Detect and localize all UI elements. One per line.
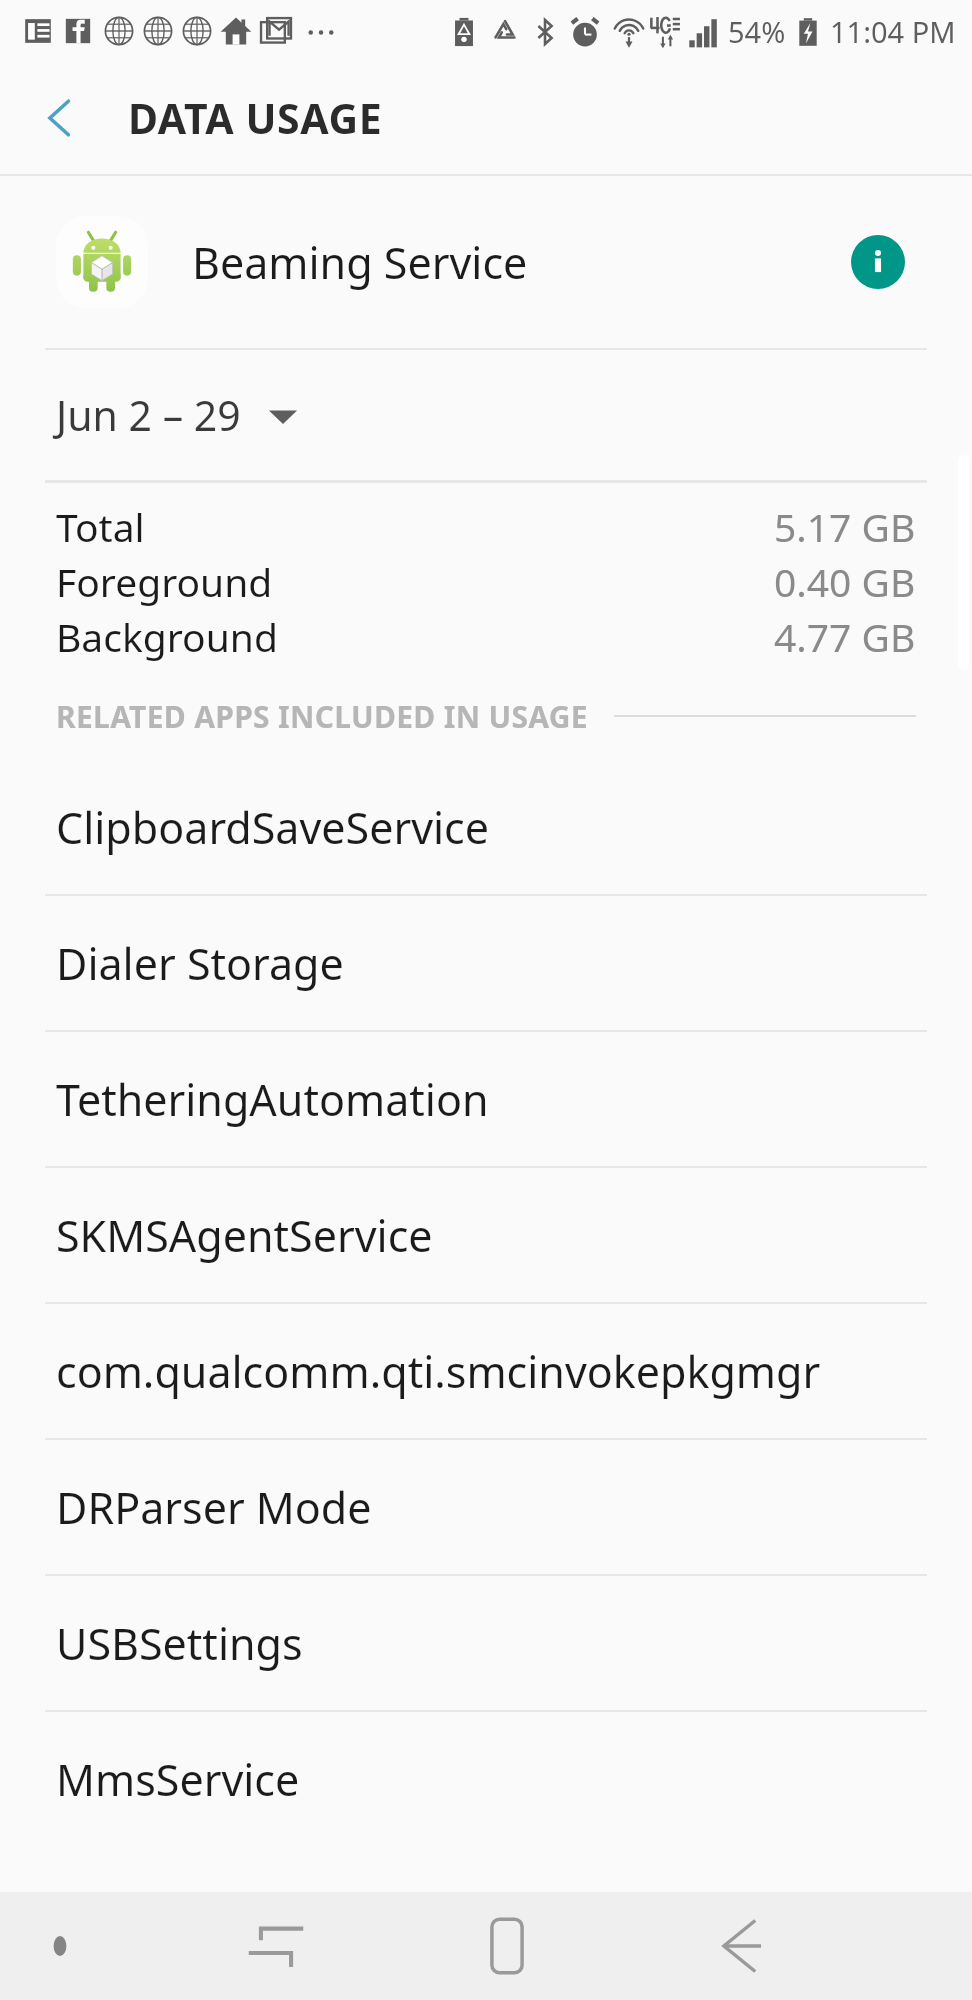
staticText: Background [56, 610, 278, 663]
staticText: ClipboardSaveService [56, 798, 490, 857]
button[interactable]: SKMSAgentService [0, 1168, 972, 1302]
button[interactable]: Jun 2 – 29 [0, 350, 972, 480]
staticText: DRParser Mode [56, 1478, 372, 1537]
button[interactable]: Navigation hint [24, 1910, 96, 1982]
button[interactable]: Beaming Service [0, 176, 972, 348]
staticText: RELATED APPS INCLUDED IN USAGE [56, 696, 588, 737]
button[interactable]: DRParser Mode [0, 1440, 972, 1574]
staticText: MmsService [56, 1750, 300, 1809]
staticText: Total [56, 500, 145, 553]
staticText: TetheringAutomation [56, 1070, 489, 1129]
button[interactable]: com.qualcomm.qti.smcinvokepkgmgr [0, 1304, 972, 1438]
button[interactable]: App info [834, 218, 922, 306]
button[interactable]: Recent apps [216, 1892, 336, 2000]
staticText: com.qualcomm.qti.smcinvokepkgmgr [56, 1342, 821, 1401]
staticText: Foreground [56, 555, 273, 608]
staticText: 54% [728, 12, 786, 51]
button[interactable]: Dialer Storage [0, 896, 972, 1030]
staticText: SKMSAgentService [56, 1206, 433, 1265]
staticText: DATA USAGE [128, 90, 383, 146]
staticText: Beaming Service [192, 233, 528, 292]
button[interactable]: ClipboardSaveService [0, 760, 972, 894]
button[interactable]: Back [679, 1892, 799, 2000]
staticText: Dialer Storage [56, 934, 344, 993]
staticText: 0.40 GB [774, 555, 916, 608]
button[interactable]: Home [447, 1892, 567, 2000]
staticText: 4.77 GB [774, 610, 916, 663]
button[interactable]: Back [24, 82, 96, 154]
button[interactable]: USBSettings [0, 1576, 972, 1710]
staticText: USBSettings [56, 1614, 303, 1673]
staticText: Jun 2 – 29 [56, 387, 241, 443]
button[interactable]: TetheringAutomation [0, 1032, 972, 1166]
staticText: 11:04 PM [830, 12, 956, 51]
button[interactable]: MmsService [0, 1712, 972, 1846]
staticText: 5.17 GB [774, 500, 916, 553]
